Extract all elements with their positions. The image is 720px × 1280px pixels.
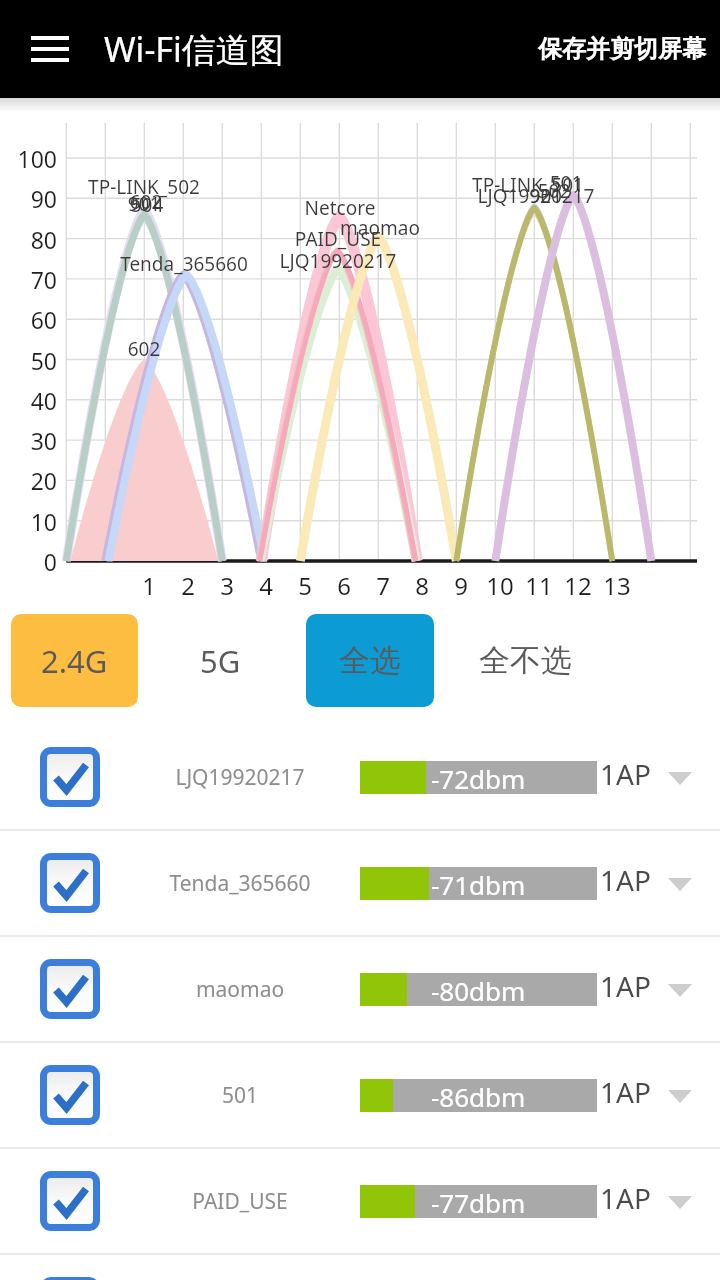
staticText: TP-LINK_501 [428, 172, 628, 198]
staticText: 90 [0, 183, 57, 214]
button[interactable]: Expand [663, 761, 697, 795]
button[interactable]: Netcore [0, 1255, 720, 1280]
staticText: 501 [140, 1081, 340, 1110]
staticText: Netcore [240, 195, 440, 221]
staticText: 8 [402, 569, 442, 602]
staticText: 6 [324, 569, 364, 602]
button[interactable]: Expand [663, 867, 697, 901]
staticText: Tenda_365660 [84, 251, 284, 277]
button[interactable]: Expand [663, 973, 697, 1007]
staticText: 10 [0, 506, 57, 537]
staticText: 11 [519, 569, 559, 602]
staticText: -77dbm [431, 1185, 526, 1218]
staticText: 保存并剪切屏幕 [538, 34, 706, 64]
staticText: 901 [44, 191, 244, 217]
staticText: 全选 [339, 641, 401, 680]
button[interactable]: 全不选 [455, 614, 595, 707]
staticText: 501 [466, 170, 666, 196]
button[interactable]: 全选 [306, 614, 434, 707]
staticText: 3 [207, 569, 247, 602]
button[interactable]: 2.4G [11, 614, 138, 707]
staticText: 80 [0, 224, 57, 255]
staticText: LJQ19920217 [436, 183, 636, 209]
staticText: TP-LINK_502 [44, 174, 244, 200]
staticText: 602 [46, 189, 246, 215]
staticText: 5G [200, 640, 241, 682]
staticText: -72dbm [431, 761, 526, 794]
staticText: 12 [558, 569, 598, 602]
staticText: LJQ19920217 [140, 763, 340, 792]
button[interactable]: PAID_USE [0, 1149, 720, 1253]
staticText: 2.4G [41, 640, 108, 682]
staticText: 504 [47, 192, 247, 218]
button[interactable]: 5G [160, 614, 280, 707]
staticText: 1AP [600, 1073, 651, 1111]
staticText: 10 [480, 569, 520, 602]
staticText: 2 [168, 569, 208, 602]
button[interactable]: maomao [0, 937, 720, 1041]
staticText: 4 [246, 569, 286, 602]
staticText: 1 [129, 569, 169, 602]
staticText: 1AP [600, 755, 651, 793]
staticText: maomao [280, 215, 480, 241]
button[interactable]: Menu [12, 11, 88, 87]
staticText: 60 [0, 304, 57, 335]
staticText: 全不选 [479, 641, 572, 680]
staticText: Tenda_365660 [140, 869, 340, 898]
staticText: -71dbm [431, 867, 526, 900]
button[interactable]: Expand [663, 1079, 697, 1113]
button[interactable]: 保存并剪切屏幕 [534, 24, 710, 74]
staticText: -86dbm [431, 1079, 526, 1112]
staticText: 13 [597, 569, 637, 602]
button[interactable]: LJQ19920217 [0, 725, 720, 829]
staticText: 30 [0, 425, 57, 456]
staticText: 502 [454, 178, 654, 204]
staticText: 901 [446, 183, 646, 209]
staticText: PAID_USE [238, 226, 438, 252]
staticText: 1AP [600, 967, 651, 1005]
staticText: 602 [44, 336, 244, 362]
staticText: 1AP [600, 861, 651, 899]
staticText: 100 [0, 143, 57, 174]
button[interactable]: Expand [663, 1185, 697, 1219]
button[interactable]: Tenda_365660 [0, 831, 720, 935]
staticText: PAID_USE [140, 1187, 340, 1216]
staticText: 20 [0, 465, 57, 496]
staticText: LJQ19920217 [238, 248, 438, 274]
staticText: 5 [285, 569, 325, 602]
staticText: 0 [0, 546, 57, 577]
button[interactable]: 501 [0, 1043, 720, 1147]
staticText: maomao [140, 975, 340, 1004]
staticText: 70 [0, 264, 57, 295]
staticText: Wi-Fi信道图 [104, 26, 284, 72]
staticText: 9 [441, 569, 481, 602]
staticText: 50 [0, 345, 57, 376]
staticText: 1AP [600, 1179, 651, 1217]
staticText: 40 [0, 385, 57, 416]
staticText: -80dbm [431, 973, 526, 1006]
staticText: 7 [363, 569, 403, 602]
